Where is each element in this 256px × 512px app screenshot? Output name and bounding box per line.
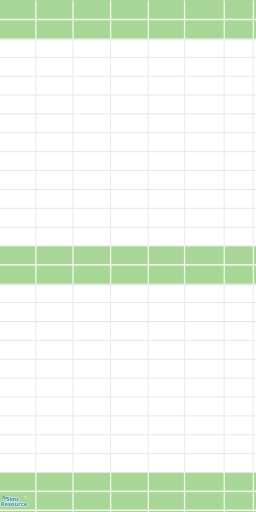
button[interactable] — [35, 228, 72, 247]
button[interactable] — [110, 266, 148, 285]
button[interactable] — [148, 171, 184, 190]
button[interactable] — [253, 209, 256, 228]
button[interactable] — [0, 247, 35, 266]
button[interactable] — [72, 323, 110, 342]
button[interactable] — [72, 247, 110, 266]
button[interactable] — [35, 57, 72, 76]
button[interactable] — [0, 437, 35, 456]
button[interactable] — [224, 361, 253, 380]
button[interactable] — [35, 190, 72, 209]
button[interactable] — [35, 418, 72, 437]
button[interactable] — [224, 266, 253, 285]
button[interactable] — [35, 266, 72, 285]
button[interactable] — [224, 38, 253, 57]
button[interactable] — [110, 171, 148, 190]
button[interactable] — [110, 133, 148, 152]
button[interactable] — [0, 190, 35, 209]
button[interactable] — [35, 76, 72, 95]
button[interactable] — [224, 19, 253, 38]
button[interactable] — [110, 209, 148, 228]
button[interactable] — [110, 304, 148, 323]
button[interactable] — [35, 475, 72, 494]
button[interactable] — [148, 95, 184, 114]
button[interactable] — [72, 285, 110, 304]
button[interactable] — [35, 114, 72, 133]
button[interactable] — [35, 95, 72, 114]
button[interactable] — [224, 152, 253, 171]
button[interactable] — [224, 76, 253, 95]
button[interactable] — [110, 57, 148, 76]
button[interactable] — [0, 209, 35, 228]
button[interactable] — [35, 304, 72, 323]
button[interactable] — [184, 190, 224, 209]
button[interactable] — [35, 133, 72, 152]
button[interactable] — [35, 38, 72, 57]
button[interactable] — [0, 399, 35, 418]
button[interactable] — [224, 494, 253, 512]
button[interactable] — [253, 456, 256, 475]
button[interactable] — [148, 304, 184, 323]
button[interactable] — [35, 399, 72, 418]
button[interactable] — [148, 494, 184, 512]
button[interactable] — [253, 152, 256, 171]
button[interactable] — [184, 76, 224, 95]
button[interactable] — [0, 57, 35, 76]
button[interactable] — [110, 19, 148, 38]
button[interactable] — [35, 171, 72, 190]
button[interactable] — [224, 133, 253, 152]
button[interactable] — [184, 323, 224, 342]
button[interactable] — [224, 57, 253, 76]
button[interactable] — [110, 38, 148, 57]
button[interactable] — [253, 266, 256, 285]
button[interactable] — [110, 76, 148, 95]
button[interactable] — [110, 342, 148, 361]
button[interactable] — [253, 95, 256, 114]
button[interactable] — [72, 38, 110, 57]
button[interactable] — [0, 494, 35, 512]
button[interactable] — [0, 19, 35, 38]
button[interactable] — [184, 266, 224, 285]
button[interactable] — [72, 114, 110, 133]
button[interactable] — [110, 437, 148, 456]
button[interactable] — [224, 95, 253, 114]
button[interactable] — [148, 361, 184, 380]
button[interactable] — [110, 95, 148, 114]
button[interactable] — [0, 95, 35, 114]
button[interactable] — [110, 361, 148, 380]
button[interactable] — [184, 171, 224, 190]
button[interactable] — [72, 152, 110, 171]
button[interactable] — [72, 380, 110, 399]
button[interactable] — [72, 494, 110, 512]
button[interactable] — [253, 380, 256, 399]
button[interactable] — [72, 95, 110, 114]
button[interactable] — [253, 38, 256, 57]
button[interactable] — [184, 285, 224, 304]
button[interactable] — [72, 133, 110, 152]
button[interactable] — [253, 285, 256, 304]
button[interactable] — [224, 171, 253, 190]
button[interactable] — [72, 437, 110, 456]
button[interactable] — [0, 266, 35, 285]
button[interactable] — [148, 190, 184, 209]
button[interactable] — [253, 76, 256, 95]
button[interactable] — [224, 114, 253, 133]
button[interactable] — [110, 494, 148, 512]
button[interactable] — [184, 152, 224, 171]
button[interactable] — [184, 57, 224, 76]
button[interactable] — [184, 209, 224, 228]
button[interactable] — [224, 285, 253, 304]
button[interactable] — [224, 190, 253, 209]
button[interactable] — [184, 475, 224, 494]
button[interactable] — [148, 133, 184, 152]
button[interactable] — [184, 437, 224, 456]
button[interactable] — [72, 19, 110, 38]
button[interactable] — [148, 247, 184, 266]
button[interactable] — [184, 114, 224, 133]
button[interactable] — [0, 456, 35, 475]
button[interactable] — [224, 380, 253, 399]
button[interactable] — [0, 76, 35, 95]
button[interactable] — [110, 152, 148, 171]
button[interactable] — [253, 0, 256, 19]
button[interactable] — [253, 361, 256, 380]
button[interactable] — [184, 399, 224, 418]
